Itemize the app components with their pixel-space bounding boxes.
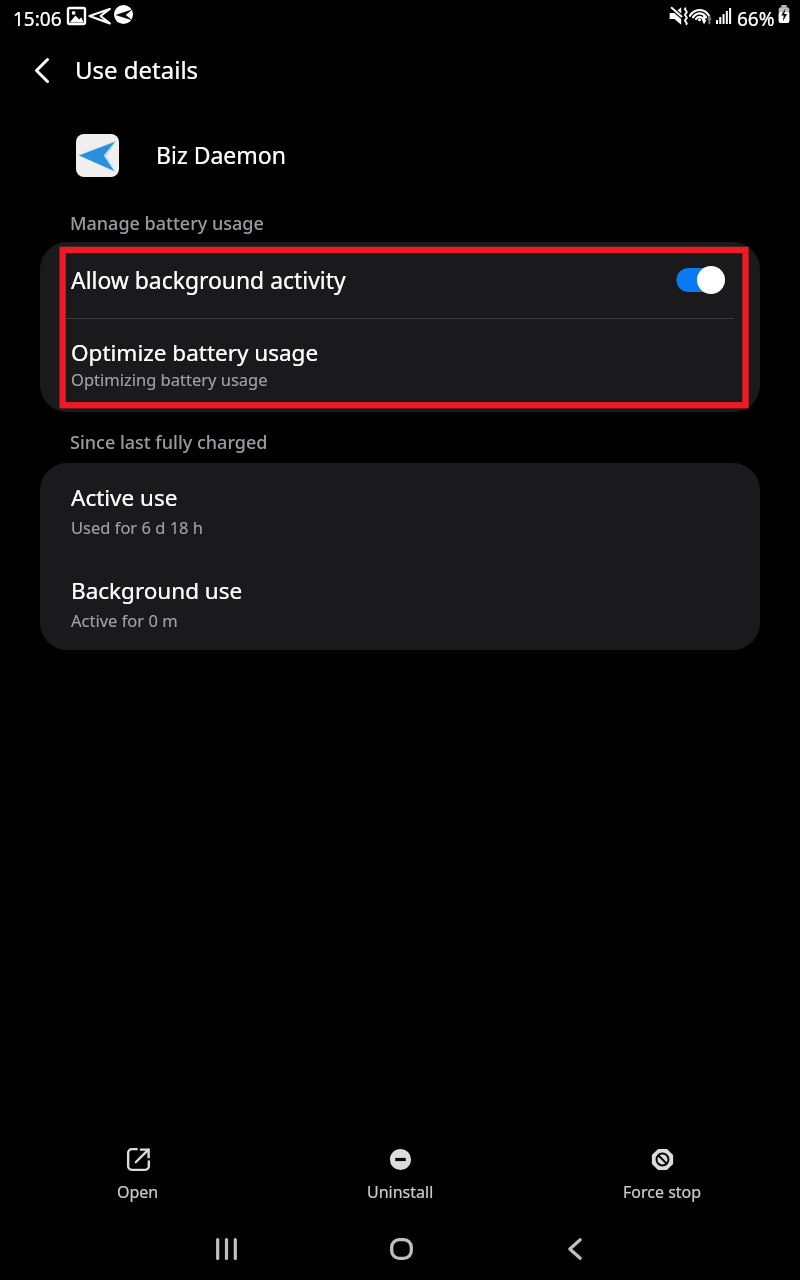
staticText: 66% [737, 6, 775, 32]
button[interactable]: Recent apps [194, 1217, 258, 1280]
button[interactable]: Background use [40, 556, 760, 650]
staticText: Use details [75, 53, 199, 86]
staticText: Manage battery usage [70, 211, 264, 236]
staticText: Active for 0 m [71, 609, 178, 631]
button[interactable]: Home [369, 1217, 433, 1280]
staticText: Used for 6 d 18 h [71, 516, 203, 538]
button[interactable]: Optimize battery usage [40, 319, 760, 412]
staticText: Allow background activity [71, 265, 669, 296]
staticText: Optimize battery usage [71, 337, 319, 368]
button[interactable]: Back [543, 1217, 607, 1280]
staticText: Biz Daemon [156, 139, 286, 170]
staticText: Uninstall [367, 1181, 434, 1203]
button[interactable]: Force stop [587, 1136, 737, 1208]
staticText: Force stop [623, 1181, 702, 1203]
button[interactable]: Open [63, 1136, 213, 1208]
staticText: Since last fully charged [70, 430, 268, 455]
staticText: Active use [71, 482, 178, 513]
staticText: Background use [71, 575, 243, 606]
button[interactable]: Active use [40, 463, 760, 556]
staticText: Open [117, 1181, 159, 1203]
button[interactable]: Back [22, 50, 62, 90]
staticText: 15:06 [13, 6, 62, 32]
button[interactable]: Allow background activity [669, 260, 731, 300]
button[interactable]: Allow background activity [40, 242, 760, 318]
staticText: Optimizing battery usage [71, 368, 268, 390]
button[interactable]: Uninstall [325, 1136, 475, 1208]
